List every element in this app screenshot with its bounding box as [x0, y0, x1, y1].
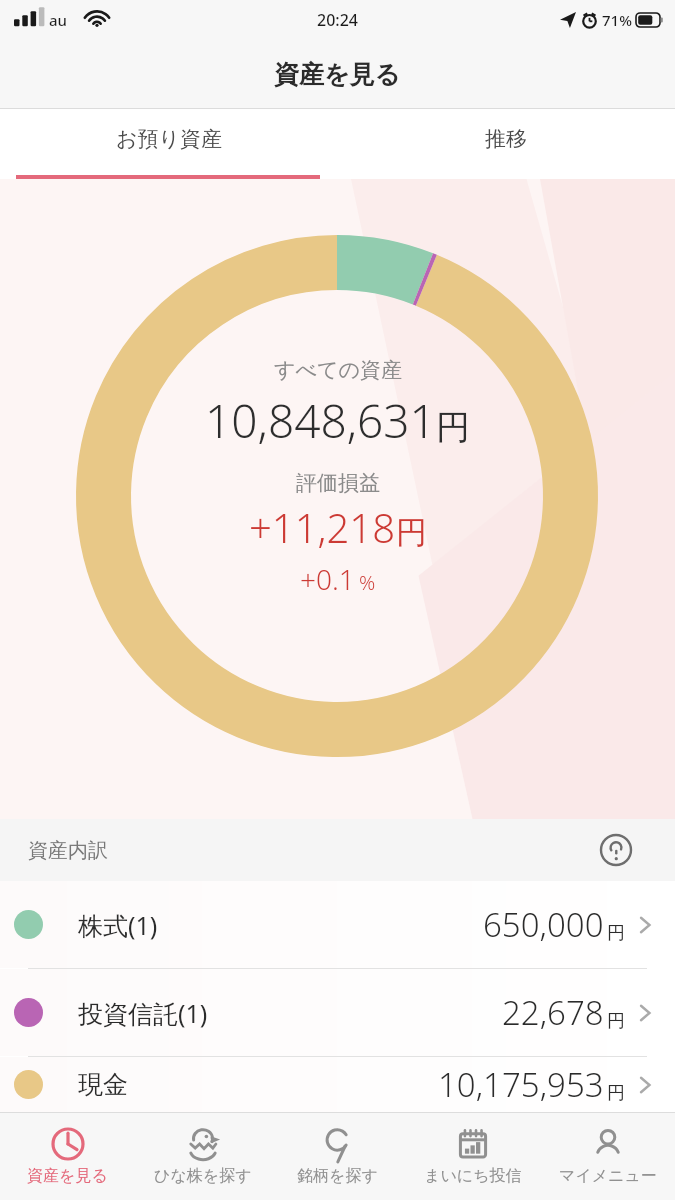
staticText: ひな株を探す [154, 1166, 252, 1186]
staticText: 評価損益 [296, 470, 380, 496]
staticText: 10,175,953 [438, 1062, 604, 1107]
button[interactable]: 銘柄を探す [270, 1112, 405, 1200]
staticText: まいにち投信 [424, 1166, 522, 1186]
button[interactable]: お預り資産 [0, 109, 337, 179]
button[interactable]: ひな株を探す [135, 1112, 270, 1200]
button[interactable]: マイメニュー [540, 1112, 675, 1200]
staticText: 650,000 [483, 902, 604, 947]
staticText: 71% [602, 10, 632, 30]
staticText: 推移 [485, 126, 527, 152]
staticText: すべての資産 [274, 357, 402, 383]
staticText: お預り資産 [116, 126, 222, 152]
staticText: 資産内訳 [28, 838, 108, 863]
button[interactable]: 株式(1) [0, 881, 675, 968]
staticText: 現金 [78, 1069, 128, 1100]
button[interactable]: 推移 [337, 109, 675, 179]
button[interactable]: 投資信託(1) [0, 969, 675, 1056]
staticText: 投資信託(1) [78, 996, 208, 1030]
button[interactable]: 現金 [0, 1057, 675, 1112]
staticText: 資産を見る [27, 1166, 108, 1186]
staticText: 資産を見る [274, 59, 401, 90]
staticText: au [49, 10, 67, 30]
staticText: % [359, 569, 376, 596]
staticText: 円 [436, 406, 470, 449]
staticText: 円 [607, 1010, 625, 1033]
staticText: 株式(1) [78, 908, 158, 942]
staticText: 銘柄を探す [297, 1166, 378, 1186]
button[interactable]: ヘルプ [597, 831, 635, 869]
staticText: +0.1 [300, 560, 355, 598]
staticText: +11,218 [249, 500, 396, 554]
staticText: マイメニュー [559, 1166, 657, 1186]
staticText: 10,848,631 [205, 389, 436, 452]
staticText: 22,678 [502, 990, 604, 1035]
button[interactable]: 資産を見る [0, 1112, 135, 1200]
staticText: 円 [396, 513, 427, 552]
staticText: 20:24 [317, 9, 358, 31]
staticText: 円 [607, 922, 625, 945]
staticText: 円 [607, 1082, 625, 1105]
button[interactable]: まいにち投信 [405, 1112, 540, 1200]
